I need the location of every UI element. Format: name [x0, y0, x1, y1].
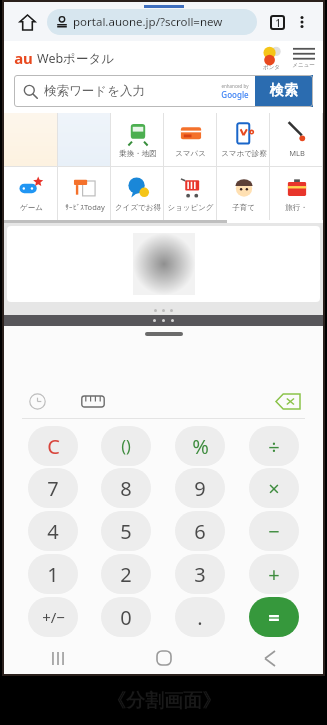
button[interactable]: 1: [28, 554, 78, 594]
button[interactable]: ゲーム: [4, 167, 58, 220]
staticText: −: [268, 518, 280, 545]
staticText: 6: [194, 518, 206, 545]
button[interactable]: ポンタ: [262, 46, 280, 71]
button[interactable]: .: [175, 597, 225, 637]
button[interactable]: 検索ワードを入力: [14, 75, 313, 107]
button[interactable]: (): [101, 426, 151, 466]
button[interactable]: ÷: [249, 426, 299, 466]
button[interactable]: Recents: [4, 642, 111, 674]
button[interactable]: 0: [101, 597, 151, 637]
staticText: +/−: [42, 607, 65, 627]
staticText: 0: [120, 604, 132, 631]
button[interactable]: ×: [249, 468, 299, 508]
staticText: +: [268, 561, 280, 588]
button[interactable]: Unit converter: [76, 384, 110, 418]
button[interactable]: 子育て: [217, 167, 270, 220]
staticText: ポンタ: [263, 64, 280, 71]
button[interactable]: Backspace: [271, 384, 305, 418]
staticText: Webポータル: [37, 50, 114, 67]
staticText: メニュー: [292, 62, 315, 69]
button[interactable]: Tabs: [264, 9, 290, 35]
button[interactable]: portal.auone.jp/?scroll=new: [47, 9, 257, 35]
button[interactable]: MLB: [270, 113, 323, 166]
staticText: 子育て: [232, 203, 255, 212]
button[interactable]: [7, 226, 320, 302]
button[interactable]: 6: [175, 511, 225, 551]
staticText: ×: [268, 475, 280, 502]
button[interactable]: 7: [28, 468, 78, 508]
button[interactable]: History: [22, 386, 52, 416]
staticText: ゲーム: [20, 203, 43, 212]
staticText: Google: [221, 89, 249, 100]
staticText: %: [192, 433, 209, 460]
staticText: 《分割画面》: [107, 689, 221, 713]
staticText: =: [268, 604, 280, 631]
button[interactable]: =: [249, 597, 299, 637]
staticText: .: [197, 604, 203, 631]
staticText: ショッピング: [167, 203, 214, 212]
staticText: スマホで診察: [221, 149, 267, 158]
staticText: 2: [120, 561, 132, 588]
button[interactable]: Home: [13, 8, 41, 36]
button[interactable]: 3: [175, 554, 225, 594]
staticText: クイズでお得: [115, 203, 161, 212]
staticText: MLB: [289, 148, 305, 158]
staticText: 検索: [270, 82, 298, 100]
button[interactable]: スマホで診察: [217, 113, 270, 166]
button[interactable]: 検索: [255, 75, 313, 107]
button[interactable]: +/−: [28, 597, 78, 637]
button[interactable]: ショッピング: [164, 167, 217, 220]
staticText: 4: [47, 518, 59, 545]
staticText: enhanced by: [221, 83, 249, 89]
staticText: au: [14, 48, 33, 68]
staticText: 9: [194, 475, 206, 502]
staticText: 乗換・地図: [119, 149, 157, 158]
button[interactable]: −: [249, 511, 299, 551]
staticText: 1: [275, 16, 281, 30]
button[interactable]: スマパス: [164, 113, 217, 166]
staticText: 3: [194, 561, 206, 588]
staticText: portal.auone.jp/?scroll=new: [73, 14, 223, 30]
staticText: ÷: [268, 433, 280, 460]
staticText: ｻｰﾋﾞｽToday: [65, 202, 105, 212]
button[interactable]: +: [249, 554, 299, 594]
button[interactable]: 9: [175, 468, 225, 508]
staticText: スマパス: [175, 149, 206, 158]
staticText: 8: [120, 475, 132, 502]
button[interactable]: Home: [111, 642, 217, 674]
staticText: 1: [47, 561, 59, 588]
button[interactable]: 5: [101, 511, 151, 551]
button[interactable]: ｻｰﾋﾞｽToday: [58, 167, 111, 220]
button[interactable]: 8: [101, 468, 151, 508]
button[interactable]: 2: [101, 554, 151, 594]
staticText: 5: [120, 518, 132, 545]
button[interactable]: メニュー: [292, 47, 315, 69]
staticText: (): [121, 435, 131, 457]
button[interactable]: %: [175, 426, 225, 466]
button[interactable]: More options: [290, 10, 314, 34]
button[interactable]: Back: [217, 642, 323, 674]
button[interactable]: 旅行・: [270, 167, 323, 220]
staticText: 検索ワードを入力: [44, 83, 145, 99]
button[interactable]: 乗換・地図: [111, 113, 164, 166]
staticText: C: [47, 433, 60, 460]
staticText: 旅行・: [285, 203, 308, 212]
button[interactable]: C: [28, 426, 78, 466]
button[interactable]: [4, 113, 58, 166]
button[interactable]: [58, 113, 111, 166]
button[interactable]: 4: [28, 511, 78, 551]
staticText: 7: [47, 475, 59, 502]
button[interactable]: クイズでお得: [111, 167, 164, 220]
